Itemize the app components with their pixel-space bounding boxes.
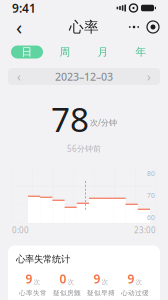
staticText: 78 bbox=[51, 97, 89, 141]
staticText: 次/分钟 bbox=[90, 117, 117, 128]
button[interactable]: 更多 bbox=[124, 20, 144, 34]
staticText: 日 bbox=[21, 45, 32, 58]
staticText: 23:00 bbox=[134, 225, 156, 235]
staticText: 9 bbox=[25, 271, 32, 287]
staticText: 0:00 bbox=[12, 225, 29, 235]
staticText: 2023–12–03 bbox=[55, 69, 113, 84]
staticText: 0 bbox=[59, 271, 66, 287]
staticText: 月 bbox=[97, 45, 108, 58]
staticText: ‹ bbox=[16, 14, 22, 40]
button[interactable]: 返回 bbox=[6, 16, 32, 38]
staticText: 年 bbox=[135, 45, 146, 58]
button[interactable]: 年 bbox=[122, 43, 160, 61]
staticText: 次 bbox=[101, 278, 108, 286]
staticText: 心率 bbox=[69, 18, 99, 36]
button[interactable]: 月 bbox=[84, 43, 122, 61]
staticText: ‹ bbox=[17, 68, 21, 84]
staticText: 9 bbox=[93, 271, 100, 287]
staticText: 80 bbox=[147, 169, 155, 178]
button[interactable]: 后一天 bbox=[138, 68, 160, 84]
staticText: 次 bbox=[33, 278, 40, 286]
staticText: 疑似房颤 bbox=[53, 289, 81, 297]
staticText: › bbox=[147, 68, 151, 84]
staticText: 次 bbox=[135, 278, 142, 286]
staticText: 心率失常统计 bbox=[16, 253, 70, 265]
staticText: 心率失常 bbox=[19, 289, 47, 297]
button[interactable]: 前一天 bbox=[8, 68, 30, 84]
staticText: 9 bbox=[127, 271, 134, 287]
staticText: 心动过缓 bbox=[121, 289, 149, 297]
button[interactable]: 心率失常统计 bbox=[8, 245, 160, 300]
staticText: 9:41 bbox=[12, 0, 36, 16]
staticText: 60 bbox=[147, 213, 155, 222]
button[interactable]: 定位 bbox=[144, 19, 162, 35]
staticText: 70 bbox=[147, 191, 155, 200]
staticText: 周 bbox=[59, 45, 70, 58]
staticText: 疑似早搏 bbox=[87, 289, 115, 297]
staticText: 56分钟前 bbox=[67, 143, 101, 154]
button[interactable]: 周 bbox=[46, 43, 84, 61]
button[interactable]: 日 bbox=[8, 43, 46, 61]
staticText: 次 bbox=[67, 278, 74, 286]
